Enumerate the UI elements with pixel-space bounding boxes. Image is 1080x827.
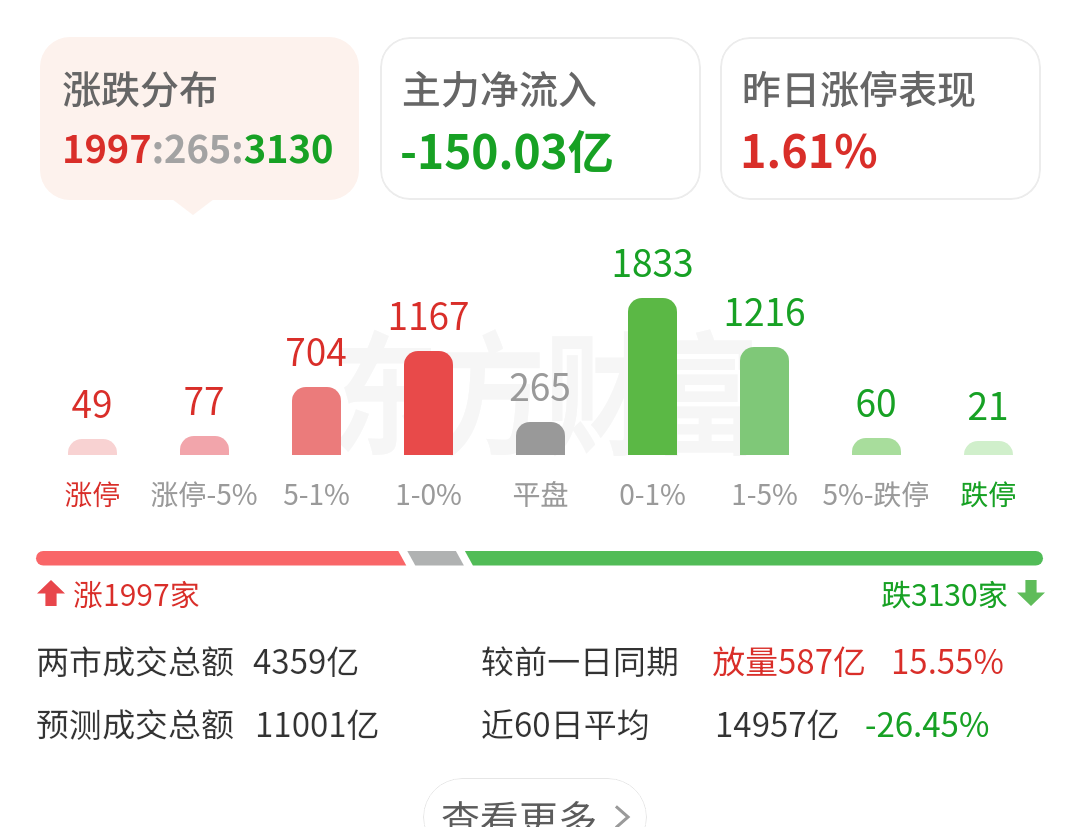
staticText: 1167 <box>387 287 470 341</box>
staticText: 704 <box>285 323 347 377</box>
staticText: 265 <box>509 358 571 412</box>
staticText: 涨1997家 <box>73 571 200 614</box>
staticText: 预测成交总额 <box>36 699 234 747</box>
staticText: 1-0% <box>395 473 462 514</box>
staticText: 21 <box>967 377 1009 431</box>
button[interactable]: 涨跌分布 <box>40 37 359 200</box>
staticText: -150.03亿 <box>400 116 614 183</box>
staticText: 60 <box>855 374 897 428</box>
staticText: 跌停 <box>960 473 1017 514</box>
staticText: 14957亿 <box>715 699 840 747</box>
staticText: 平盘 <box>512 473 569 514</box>
staticText: 11001亿 <box>255 699 380 747</box>
staticText: 查看更多 <box>441 789 598 827</box>
staticText: 15.55% <box>891 636 1004 684</box>
staticText: -26.45% <box>865 699 990 747</box>
staticText: 4359亿 <box>253 636 360 684</box>
staticText: 77 <box>183 372 225 426</box>
staticText: 昨日涨停表现 <box>742 59 977 115</box>
staticText: 1-5% <box>731 473 798 514</box>
button[interactable]: 昨日涨停表现 <box>720 37 1041 200</box>
staticText: 49 <box>71 375 113 429</box>
button[interactable]: 主力净流入 <box>380 37 701 200</box>
staticText: 5-1% <box>283 473 350 514</box>
staticText: 1.61% <box>740 116 878 181</box>
other: Declining stocks <box>1017 580 1045 606</box>
staticText: 近60日平均 <box>481 699 650 747</box>
button[interactable]: 查看更多 <box>423 778 647 827</box>
staticText: 涨跌分布 <box>62 59 219 115</box>
staticText: 较前一日同期 <box>481 636 679 684</box>
button[interactable]: Advancing stocks <box>37 571 200 614</box>
staticText: 1997:265:3130 <box>62 119 334 174</box>
staticText: 1216 <box>723 283 806 337</box>
staticText: 主力净流入 <box>402 59 598 115</box>
staticText: 跌3130家 <box>881 571 1008 614</box>
staticText: 1833 <box>611 234 694 288</box>
staticText: 5%-跌停 <box>822 473 930 514</box>
staticText: 两市成交总额 <box>36 636 234 684</box>
staticText: 涨停-5% <box>150 473 258 514</box>
staticText: 放量587亿 <box>712 636 866 684</box>
staticText: 东方财富 <box>331 290 760 482</box>
staticText: 涨停 <box>64 473 121 514</box>
other: Advancing stocks <box>37 580 65 606</box>
button[interactable]: 跌3130家 <box>881 571 1045 614</box>
staticText: 0-1% <box>619 473 686 514</box>
